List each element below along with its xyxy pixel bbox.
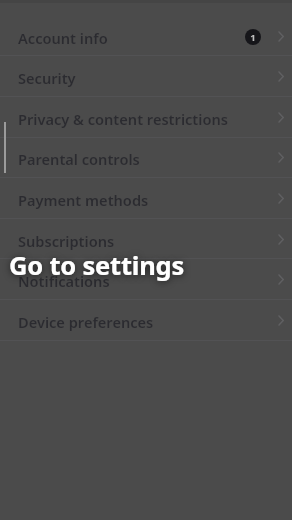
staticText: Parental controls bbox=[18, 149, 140, 169]
button[interactable]: Subscriptions bbox=[0, 219, 292, 260]
staticText: Device preferences bbox=[18, 312, 154, 332]
staticText: Notifications bbox=[18, 271, 110, 291]
staticText: 1 bbox=[250, 31, 256, 44]
button[interactable]: Security bbox=[0, 56, 292, 97]
staticText: Subscriptions bbox=[18, 231, 115, 251]
staticText: Account info bbox=[18, 28, 108, 48]
button[interactable]: Payment methods bbox=[0, 178, 292, 219]
button[interactable]: Device preferences bbox=[0, 300, 292, 341]
button[interactable]: Notifications bbox=[0, 259, 292, 300]
staticText: Payment methods bbox=[18, 190, 149, 210]
staticText: Privacy & content restrictions bbox=[18, 109, 228, 129]
staticText: Security bbox=[18, 68, 76, 88]
button[interactable]: Privacy & content restrictions bbox=[0, 97, 292, 138]
button[interactable]: Parental controls bbox=[0, 137, 292, 178]
button[interactable]: Account info bbox=[0, 16, 292, 57]
button[interactable]: Go to settings bbox=[9, 248, 185, 283]
